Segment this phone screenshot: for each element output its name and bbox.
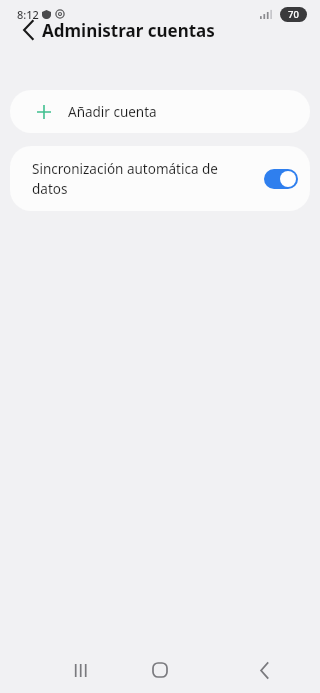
button[interactable]: Sincronización automática de datos [10,146,310,211]
button[interactable]: Añadir cuenta [10,90,310,133]
staticText: Sincronización automática de datos [32,160,242,198]
button[interactable]: Atrás [10,12,46,48]
staticText: Administrar cuentas [42,19,215,42]
staticText: Añadir cuenta [68,103,157,121]
button[interactable]: Recientes [56,647,104,693]
button[interactable]: Inicio [136,647,184,693]
button[interactable]: Sincronización automática de datos [264,169,298,189]
button[interactable]: Atrás [240,647,288,693]
staticText: 8:12 [17,7,39,22]
staticText: 70 [288,8,299,21]
